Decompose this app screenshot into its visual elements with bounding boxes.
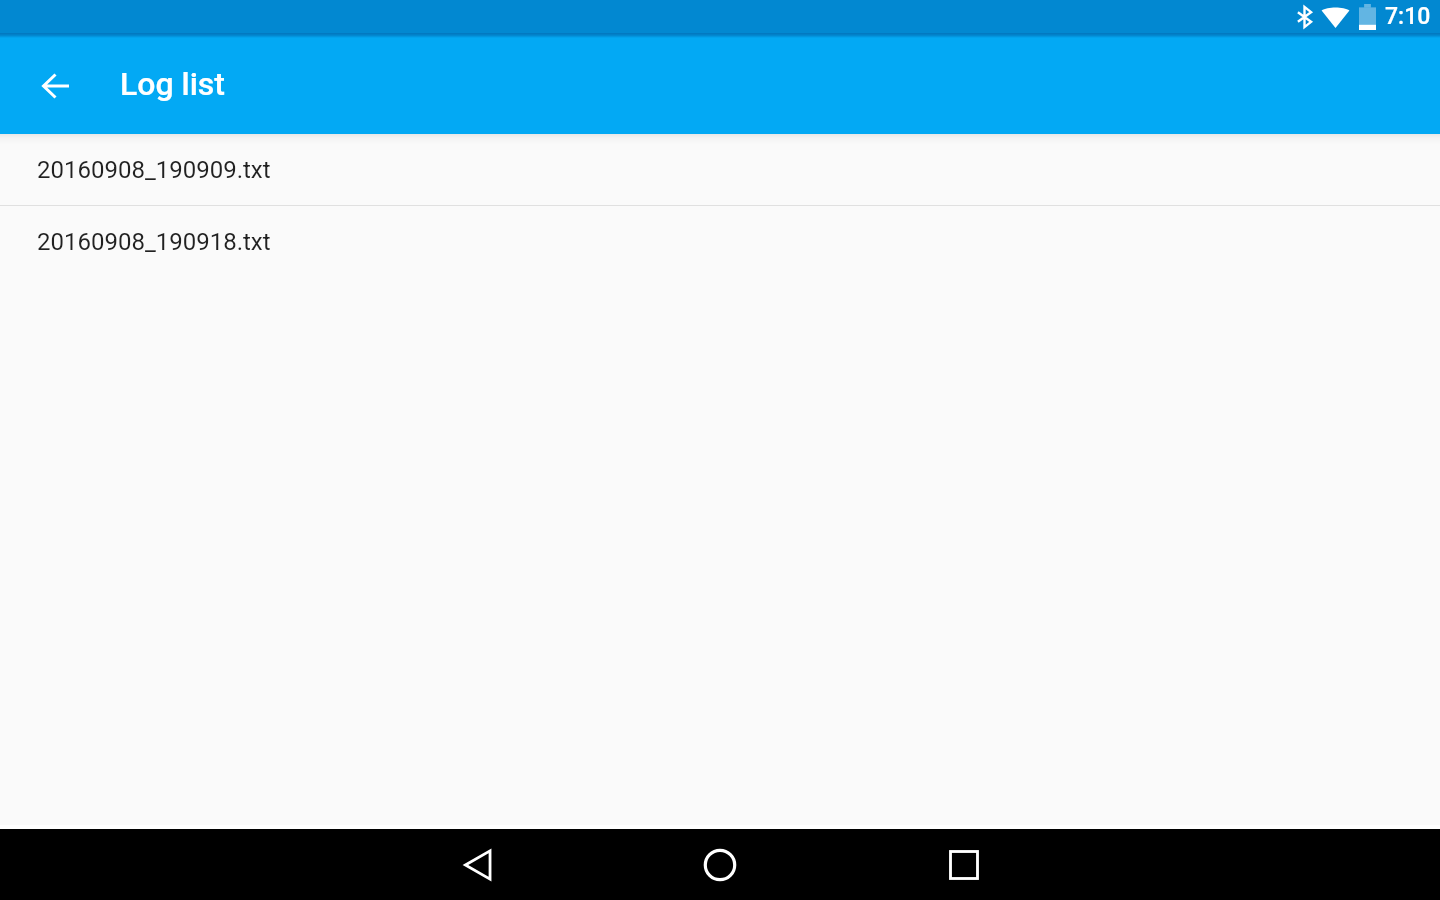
button[interactable]: Recent apps bbox=[841, 829, 1083, 900]
staticText: 7:10 bbox=[1385, 3, 1431, 30]
staticText: 20160908_190918.txt bbox=[37, 228, 271, 256]
staticText: Log list bbox=[120, 65, 225, 103]
button[interactable]: Home bbox=[599, 829, 841, 900]
button[interactable]: Back bbox=[357, 829, 599, 900]
button[interactable]: 20160908_190918.txt bbox=[0, 206, 1440, 277]
staticText: 20160908_190909.txt bbox=[37, 156, 271, 184]
button[interactable]: 20160908_190909.txt bbox=[0, 134, 1440, 205]
button[interactable]: Navigate up bbox=[7, 38, 103, 134]
